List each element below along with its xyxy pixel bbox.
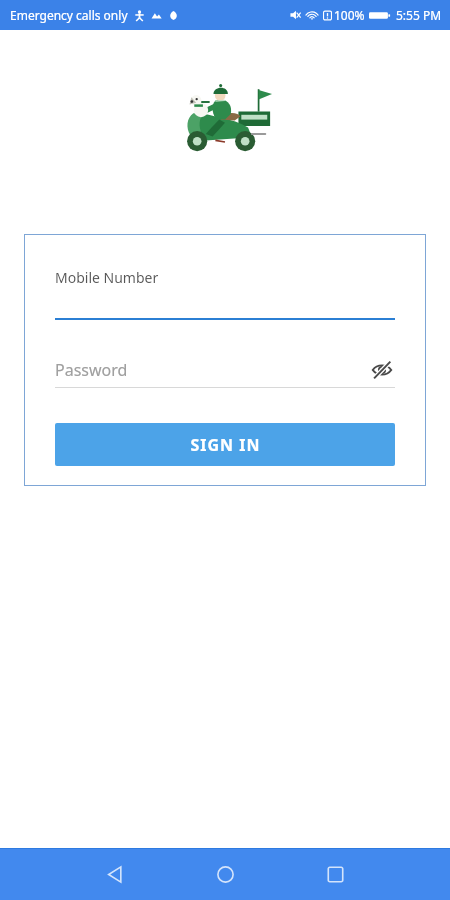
- staticText: SIGN IN: [190, 434, 261, 456]
- button[interactable]: Recent apps: [280, 848, 390, 900]
- button[interactable]: Back: [60, 848, 170, 900]
- staticText: 100%: [334, 7, 365, 23]
- staticText: Mobile Number: [55, 268, 159, 287]
- button[interactable]: SIGN IN: [55, 423, 395, 466]
- button[interactable]: Show password: [369, 357, 395, 383]
- button[interactable]: Home: [170, 848, 280, 900]
- button[interactable]: Mobile Number: [55, 268, 395, 320]
- staticText: 5:55 PM: [396, 7, 442, 23]
- button[interactable]: Password: [55, 352, 395, 388]
- staticText: Emergency calls only: [10, 7, 128, 23]
- staticText: Password: [55, 359, 128, 381]
